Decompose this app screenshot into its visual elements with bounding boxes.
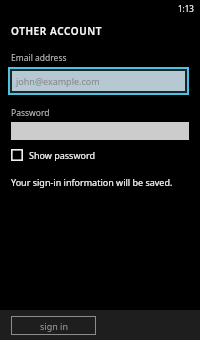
staticText: OTHER ACCOUNT [11,24,103,38]
staticText: Password [11,107,50,119]
staticText: Your sign-in information will be saved. [11,176,173,188]
staticText: john@example.com [16,75,100,87]
button[interactable]: john@example.com [12,71,185,91]
staticText: Email address [11,52,67,64]
staticText: Show password [29,149,95,161]
staticText: sign in [40,320,68,332]
button[interactable]: sign in [11,316,96,335]
button[interactable]: Show password [11,148,95,162]
staticText: 1:13 [178,3,194,14]
